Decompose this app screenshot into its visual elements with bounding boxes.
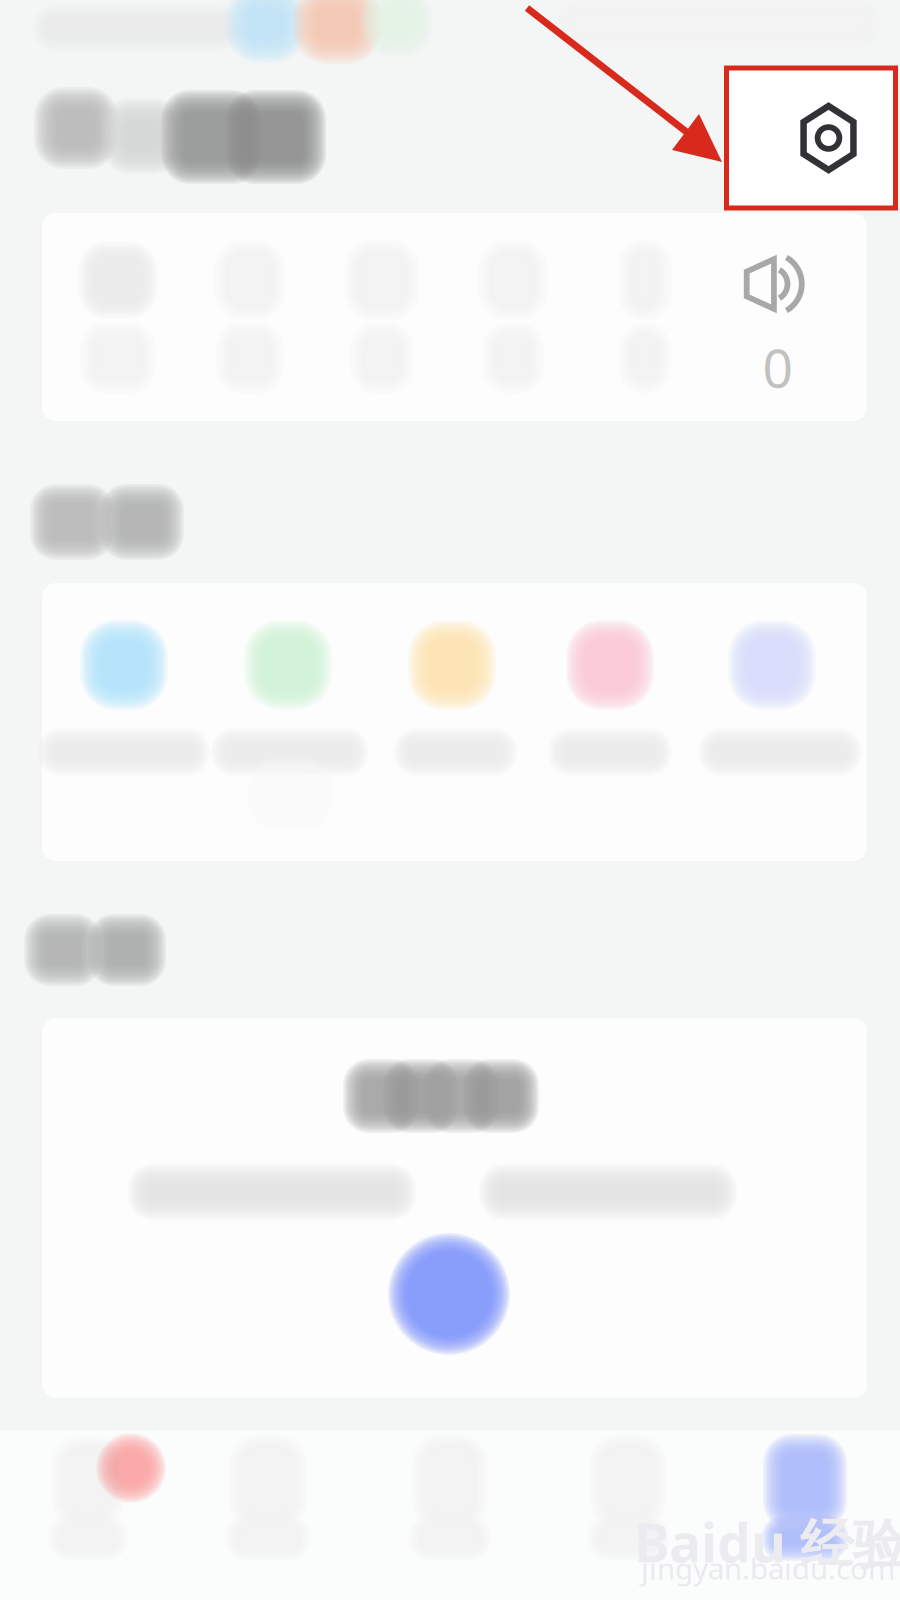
staticText: Baidu 经验 xyxy=(634,1506,900,1578)
staticText: jingyan.baidu.com xyxy=(641,1548,895,1587)
button[interactable]: Tab xyxy=(360,1430,540,1590)
button[interactable]: Quick action xyxy=(190,230,310,410)
button[interactable]: Quick action xyxy=(58,230,178,410)
button[interactable]: Tab xyxy=(178,1430,358,1590)
button[interactable]: Quick action xyxy=(322,230,442,410)
button[interactable]: Quick action xyxy=(585,230,705,410)
button[interactable]: Shortcut xyxy=(682,590,862,810)
button[interactable]: Tab xyxy=(0,1430,178,1590)
button[interactable]: Shortcut xyxy=(198,590,378,810)
button[interactable]: Tab xyxy=(538,1430,718,1590)
button[interactable]: Start xyxy=(388,1233,510,1355)
button[interactable]: Settings xyxy=(728,70,893,206)
button[interactable]: Shortcut xyxy=(362,590,542,810)
button[interactable]: Quick action xyxy=(453,230,573,410)
button[interactable]: Shortcut xyxy=(520,590,700,810)
button[interactable]: Volume xyxy=(718,231,838,411)
button[interactable]: Shortcut xyxy=(34,590,214,810)
button[interactable]: Tab xyxy=(715,1430,895,1590)
staticText: 0 xyxy=(762,332,793,402)
